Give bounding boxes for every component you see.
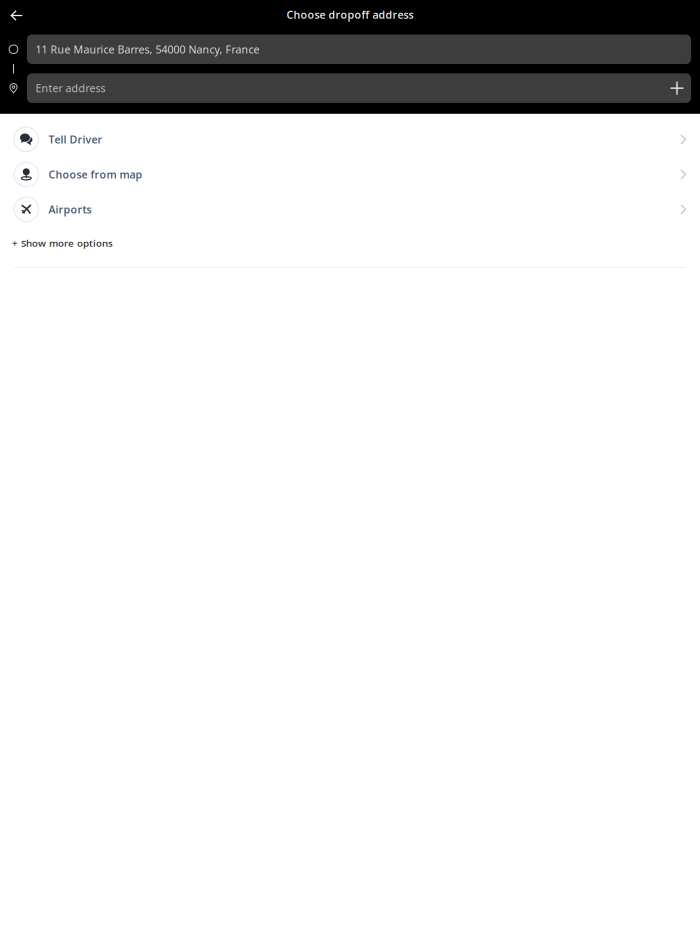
staticText: 11 Rue Maurice Barres, 54000 Nancy, Fran… — [35, 42, 259, 56]
staticText: Enter address — [35, 81, 105, 95]
button[interactable]: Back — [0, 0, 33, 30]
button[interactable]: Tell Driver — [0, 122, 700, 157]
button[interactable]: Choose from map — [0, 157, 700, 192]
staticText: Airports — [48, 202, 91, 217]
staticText: + Show more options — [12, 236, 113, 250]
button[interactable]: + Show more options — [0, 227, 700, 259]
staticText: Choose from map — [48, 167, 142, 182]
button[interactable]: Airports — [0, 192, 700, 227]
staticText: Choose dropoff address — [286, 7, 413, 22]
button[interactable]: Add stop — [663, 73, 691, 103]
staticText: Tell Driver — [48, 132, 102, 147]
